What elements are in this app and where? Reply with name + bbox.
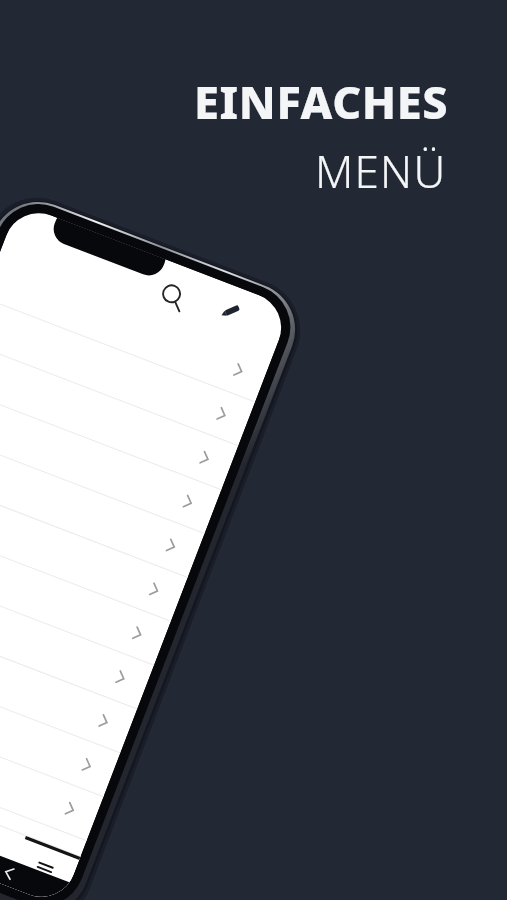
button[interactable]: Search — [44, 190, 78, 224]
